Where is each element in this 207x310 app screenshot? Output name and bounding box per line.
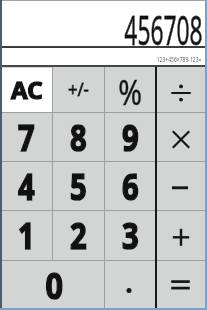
staticText: 0 [46, 261, 63, 309]
staticText: 0 [46, 261, 63, 309]
staticText: 3 [122, 211, 139, 260]
staticText: 5 [70, 162, 87, 210]
staticText: 7 [18, 113, 35, 161]
button[interactable]: 3 [104, 210, 156, 259]
button[interactable]: 8 [52, 112, 104, 160]
staticText: +/- [68, 77, 89, 102]
staticText: 123+456×789-123= [157, 55, 202, 65]
staticText: % [118, 69, 143, 114]
staticText: 8 [70, 113, 87, 161]
staticText: 4 [18, 162, 35, 210]
button[interactable]: 1 [1, 210, 52, 259]
staticText: 6 [122, 162, 139, 210]
button[interactable]: 4 [1, 161, 52, 209]
staticText: 1 [18, 211, 35, 260]
button[interactable]: 0 [3, 260, 106, 308]
staticText: AC [11, 73, 43, 106]
button[interactable] [104, 260, 156, 308]
staticText: 7 [18, 113, 35, 161]
button[interactable] [157, 112, 205, 160]
button[interactable] [157, 210, 205, 259]
staticText: 2 [70, 211, 87, 260]
button[interactable]: % [104, 67, 156, 112]
staticText: 9 [122, 113, 139, 161]
button[interactable]: 5 [52, 161, 104, 209]
staticText: 456708 [124, 2, 203, 48]
button[interactable]: 2 [52, 210, 104, 259]
button[interactable]: AC [1, 67, 52, 112]
staticText: 5 [70, 162, 87, 210]
button[interactable]: +/- [52, 67, 104, 112]
staticText: 2 [70, 211, 87, 260]
button[interactable]: 9 [104, 112, 156, 160]
staticText: 8 [70, 113, 87, 161]
staticText: 4 [18, 162, 35, 210]
button[interactable] [157, 161, 205, 209]
staticText: AC [11, 73, 43, 106]
button[interactable] [157, 260, 205, 308]
button[interactable]: 7 [1, 112, 52, 160]
staticText: 6 [122, 162, 139, 210]
staticText: 9 [122, 113, 139, 161]
button[interactable] [157, 67, 205, 112]
staticText: 456708 [124, 2, 203, 48]
staticText: 3 [122, 211, 139, 260]
button[interactable]: 6 [104, 161, 156, 209]
staticText: +/- [68, 77, 89, 102]
staticText: % [118, 69, 143, 114]
staticText: 1 [18, 211, 35, 260]
button[interactable]: 456708 [0, 2, 203, 48]
